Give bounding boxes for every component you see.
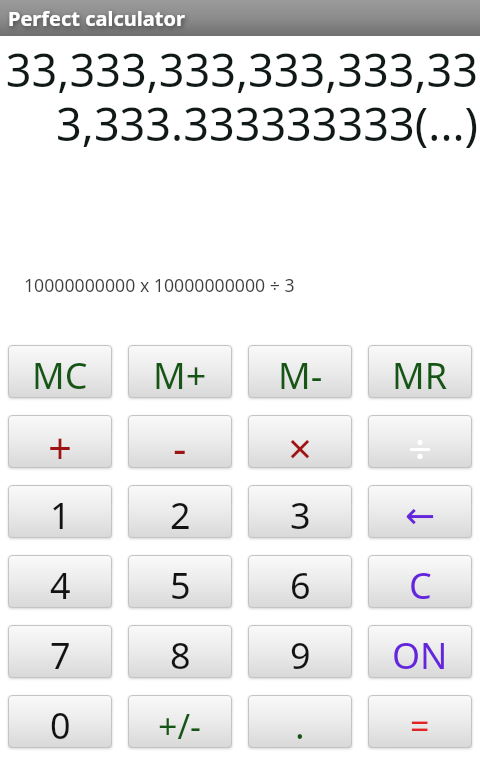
staticText: +/-: [158, 703, 202, 748]
button[interactable]: 5: [128, 555, 232, 608]
staticText: 4: [50, 561, 71, 608]
button[interactable]: M+: [128, 345, 232, 398]
button[interactable]: 0: [8, 695, 112, 748]
button[interactable]: 3: [248, 485, 352, 538]
staticText: 2: [170, 491, 191, 538]
button[interactable]: ON: [368, 625, 472, 678]
button[interactable]: 6: [248, 555, 352, 608]
button[interactable]: .: [248, 695, 352, 748]
staticText: ON: [392, 631, 448, 678]
staticText: MC: [32, 351, 88, 398]
button[interactable]: 2: [128, 485, 232, 538]
staticText: -: [173, 419, 187, 468]
staticText: M-: [278, 351, 323, 398]
staticText: =: [410, 703, 430, 748]
staticText: M+: [153, 351, 207, 398]
staticText: 8: [170, 631, 191, 678]
staticText: 3: [290, 491, 311, 538]
button[interactable]: C: [368, 555, 472, 608]
staticText: C: [409, 561, 432, 608]
staticText: 33,333,333,333,333,33 3,333.333333333(..…: [0, 39, 478, 155]
button[interactable]: ÷: [368, 415, 472, 468]
button[interactable]: 9: [248, 625, 352, 678]
button[interactable]: ←: [368, 485, 472, 538]
staticText: Perfect calculator: [8, 5, 185, 32]
staticText: MR: [392, 351, 448, 398]
staticText: 7: [50, 631, 71, 678]
staticText: 10000000000 x 10000000000 ÷ 3: [24, 273, 295, 297]
staticText: 1: [50, 491, 71, 538]
button[interactable]: MR: [368, 345, 472, 398]
staticText: ×: [288, 419, 313, 468]
button[interactable]: MC: [8, 345, 112, 398]
staticText: ←: [405, 495, 436, 537]
staticText: .: [295, 701, 305, 748]
button[interactable]: +: [8, 415, 112, 468]
staticText: ÷: [408, 419, 433, 468]
staticText: 6: [290, 561, 311, 608]
button[interactable]: M-: [248, 345, 352, 398]
button[interactable]: =: [368, 695, 472, 748]
button[interactable]: -: [128, 415, 232, 468]
staticText: +: [48, 419, 73, 468]
button[interactable]: +/-: [128, 695, 232, 748]
button[interactable]: 7: [8, 625, 112, 678]
button[interactable]: 4: [8, 555, 112, 608]
button[interactable]: 8: [128, 625, 232, 678]
staticText: 0: [50, 701, 71, 748]
button[interactable]: 1: [8, 485, 112, 538]
staticText: 9: [290, 631, 311, 678]
staticText: 5: [170, 561, 191, 608]
button[interactable]: ×: [248, 415, 352, 468]
